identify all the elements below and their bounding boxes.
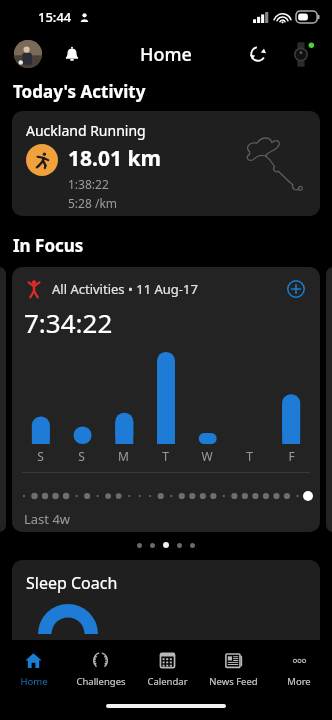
staticText: Sleep Coach bbox=[26, 572, 118, 594]
staticText: All Activities • 11 Aug-17 bbox=[52, 280, 198, 298]
staticText: 5:28 /km bbox=[68, 195, 118, 211]
staticText: More bbox=[287, 675, 311, 688]
button[interactable]: Home bbox=[0, 640, 67, 698]
staticText: T bbox=[246, 448, 253, 464]
staticText: 1:38:22 bbox=[68, 176, 109, 192]
staticText: Today's Activity bbox=[13, 80, 146, 103]
button[interactable]: Profile bbox=[14, 40, 42, 68]
button[interactable]: Auckland Running bbox=[12, 111, 320, 216]
button[interactable]: Add bbox=[284, 277, 308, 301]
button[interactable]: Calendar bbox=[134, 640, 200, 698]
staticText: T bbox=[162, 448, 169, 464]
staticText: S bbox=[78, 448, 85, 464]
button[interactable]: All Activities • 11 Aug-17 bbox=[12, 267, 320, 532]
staticText: Home bbox=[140, 42, 192, 67]
button[interactable]: Sync bbox=[242, 38, 274, 70]
button[interactable]: News Feed bbox=[200, 640, 266, 698]
staticText: Last 4w bbox=[24, 510, 71, 528]
staticText: W bbox=[201, 448, 213, 464]
staticText: 7:34:22 bbox=[24, 305, 113, 340]
button[interactable]: Challenges bbox=[67, 640, 134, 698]
staticText: S bbox=[37, 448, 44, 464]
staticText: 15:44 bbox=[38, 8, 72, 26]
staticText: Auckland Running bbox=[26, 121, 146, 140]
button[interactable]: More bbox=[266, 640, 332, 698]
staticText: Home bbox=[20, 675, 48, 688]
staticText: Challenges bbox=[76, 675, 126, 688]
button[interactable]: Sleep Coach bbox=[12, 560, 320, 670]
staticText: Calendar bbox=[147, 675, 188, 688]
staticText: News Feed bbox=[209, 675, 258, 688]
staticText: M bbox=[118, 448, 129, 464]
staticText: 18.01 km bbox=[68, 144, 161, 173]
staticText: F bbox=[288, 448, 295, 464]
button[interactable]: Watch bbox=[286, 38, 318, 70]
staticText: In Focus bbox=[13, 234, 84, 257]
button[interactable]: Notifications bbox=[56, 38, 88, 70]
